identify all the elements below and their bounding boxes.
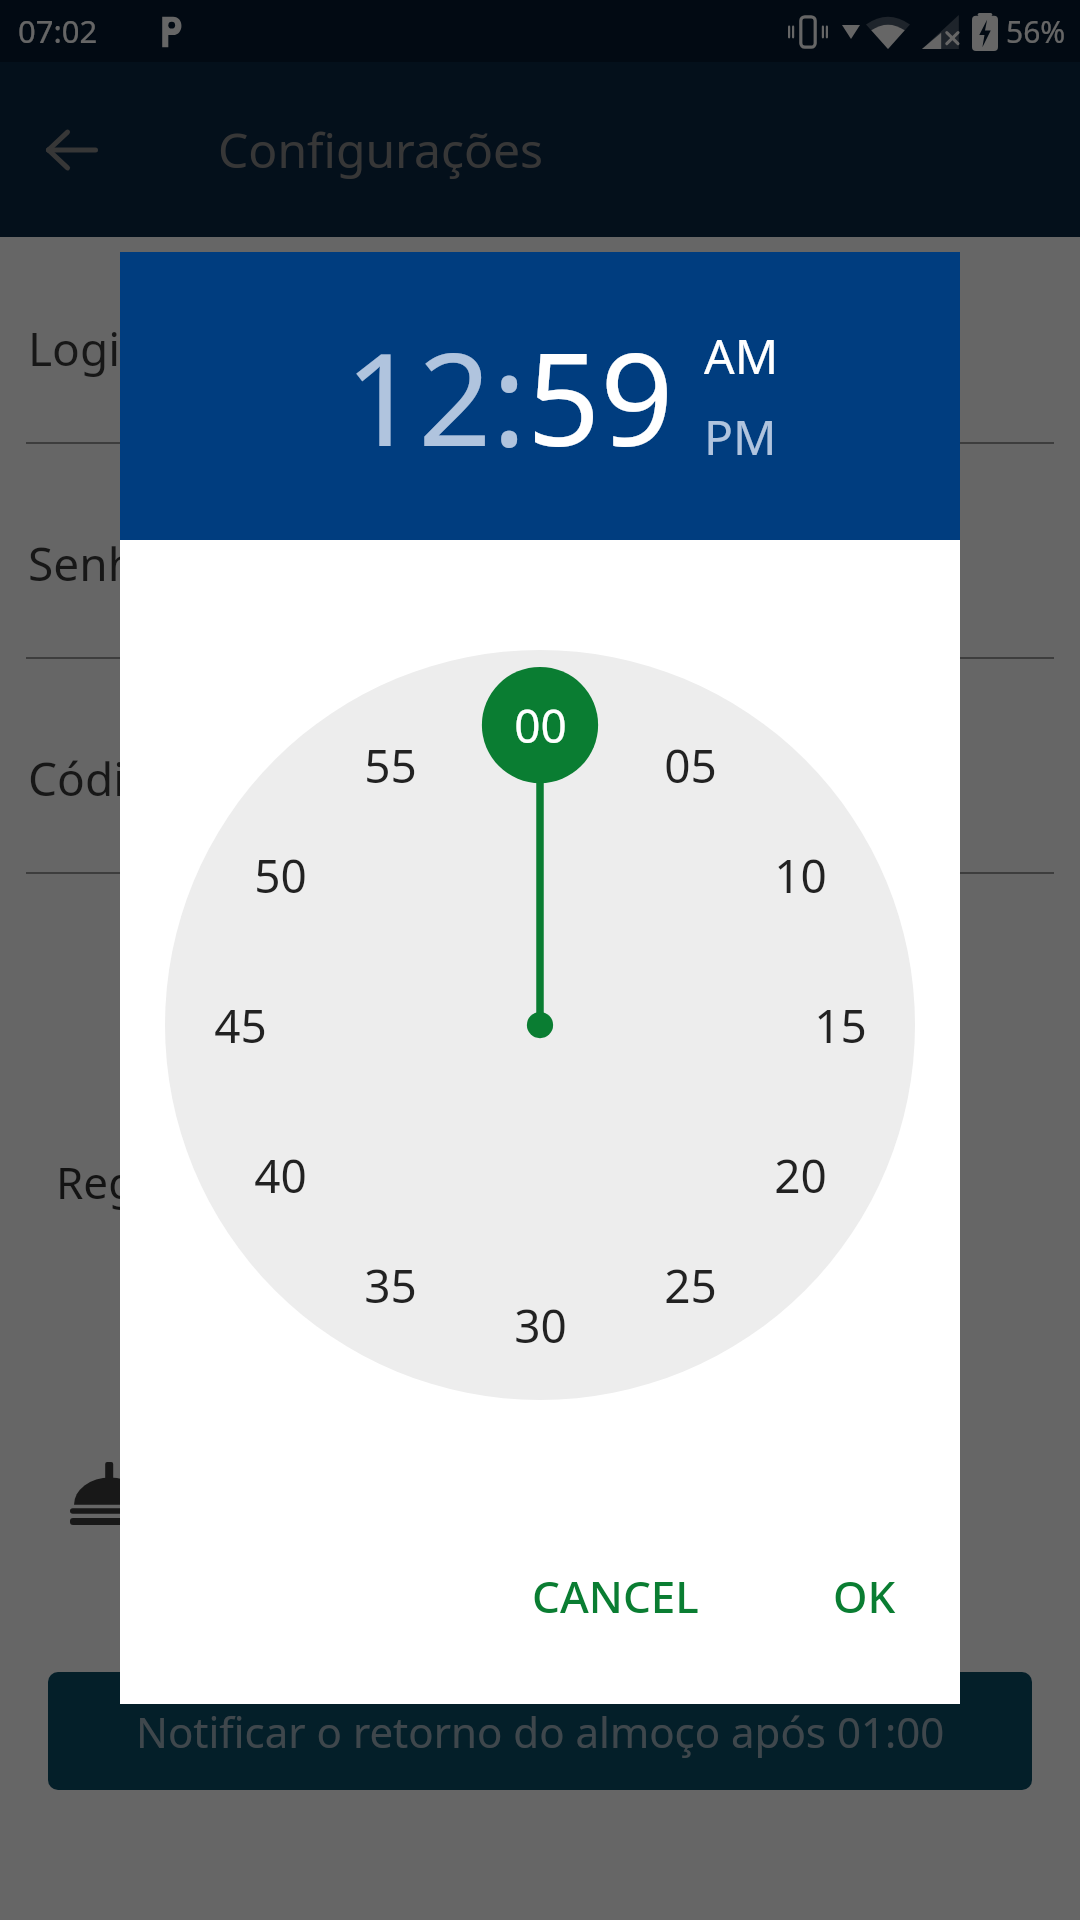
button[interactable]: 30: [485, 1270, 595, 1380]
staticText: PM: [704, 404, 777, 469]
staticText: 25: [664, 1254, 717, 1317]
button[interactable]: 59: [527, 309, 674, 483]
staticText: 30: [514, 1294, 567, 1357]
staticText: CANCEL: [532, 1566, 699, 1626]
staticText: Registrar ponto: [56, 1152, 379, 1212]
staticText: 45: [214, 994, 267, 1057]
button[interactable]: 00: [485, 670, 595, 780]
button[interactable]: Notificar o retorno do almoço após 01:00: [48, 1672, 1032, 1790]
staticText: Senha: [28, 532, 162, 595]
button[interactable]: PM: [704, 404, 777, 469]
staticText: 15: [814, 994, 867, 1057]
staticText: 07:02: [18, 10, 98, 52]
staticText: 56%: [1006, 11, 1066, 52]
button[interactable]: 35: [335, 1230, 445, 1340]
staticText: Código da empresa: [28, 747, 449, 810]
staticText: 10: [774, 844, 827, 907]
staticText: Configurações: [218, 117, 544, 182]
staticText: 55: [364, 734, 417, 797]
staticText: 35: [364, 1254, 417, 1317]
button[interactable]: 15: [785, 970, 895, 1080]
button[interactable]: 50: [225, 820, 335, 930]
button[interactable]: Back: [40, 118, 104, 182]
staticText: :: [492, 309, 527, 483]
staticText: 50: [254, 844, 307, 907]
button[interactable]: 55: [335, 710, 445, 820]
button[interactable]: 20: [745, 1120, 855, 1230]
button[interactable]: AM: [704, 323, 779, 388]
staticText: Login: [28, 317, 149, 380]
button[interactable]: 40: [225, 1120, 335, 1230]
staticText: Notificar o retorno do almoço após 01:00: [136, 1703, 945, 1760]
staticText: 05: [664, 734, 717, 797]
staticText: 00: [514, 694, 567, 757]
button[interactable]: 25: [635, 1230, 745, 1340]
staticText: 40: [254, 1144, 307, 1207]
staticText: 12: [345, 309, 492, 483]
staticText: 20: [774, 1144, 827, 1207]
button[interactable]: 12: [345, 309, 492, 483]
button[interactable]: 10: [745, 820, 855, 930]
staticText: 59: [527, 309, 674, 483]
staticText: AM: [704, 323, 779, 388]
button[interactable]: CANCEL: [508, 1548, 723, 1644]
button[interactable]: OK: [809, 1548, 920, 1644]
staticText: OK: [833, 1566, 896, 1626]
button[interactable]: 45: [185, 970, 295, 1080]
button[interactable]: 05: [635, 710, 745, 820]
